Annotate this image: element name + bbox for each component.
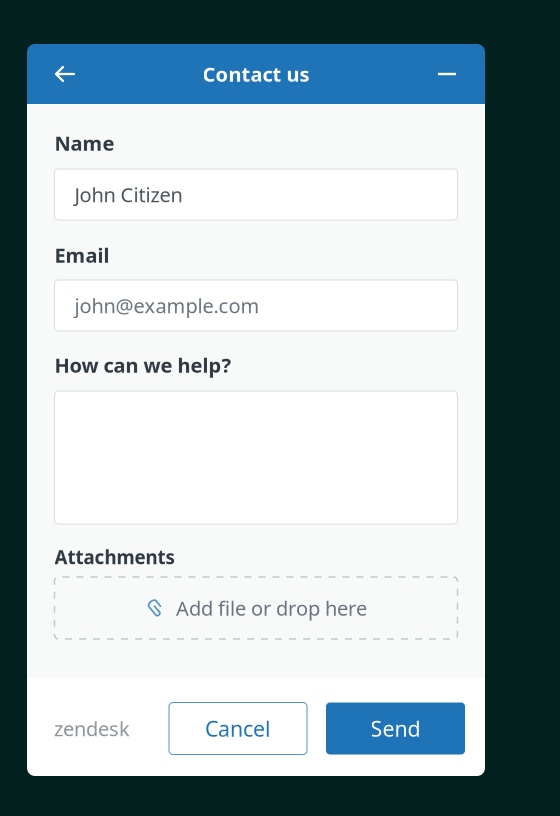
staticText: Email xyxy=(54,242,109,268)
button[interactable]: Minimize xyxy=(423,44,471,104)
staticText: Attachments xyxy=(54,545,174,569)
button[interactable]: Send xyxy=(326,702,465,754)
button[interactable]: Back xyxy=(41,44,89,104)
staticText: Cancel xyxy=(205,714,271,743)
staticText: John Citizen xyxy=(74,181,182,208)
staticText: Name xyxy=(54,130,114,156)
staticText: Add file or drop here xyxy=(176,595,367,621)
button[interactable]: Cancel xyxy=(169,702,307,754)
staticText: Contact us xyxy=(202,61,309,87)
staticText: How can we help? xyxy=(54,352,231,378)
staticText: Send xyxy=(370,714,420,743)
button[interactable]: Add file or drop here xyxy=(54,577,457,639)
staticText: zendesk xyxy=(54,715,130,742)
staticText: john@example.com xyxy=(74,292,259,319)
